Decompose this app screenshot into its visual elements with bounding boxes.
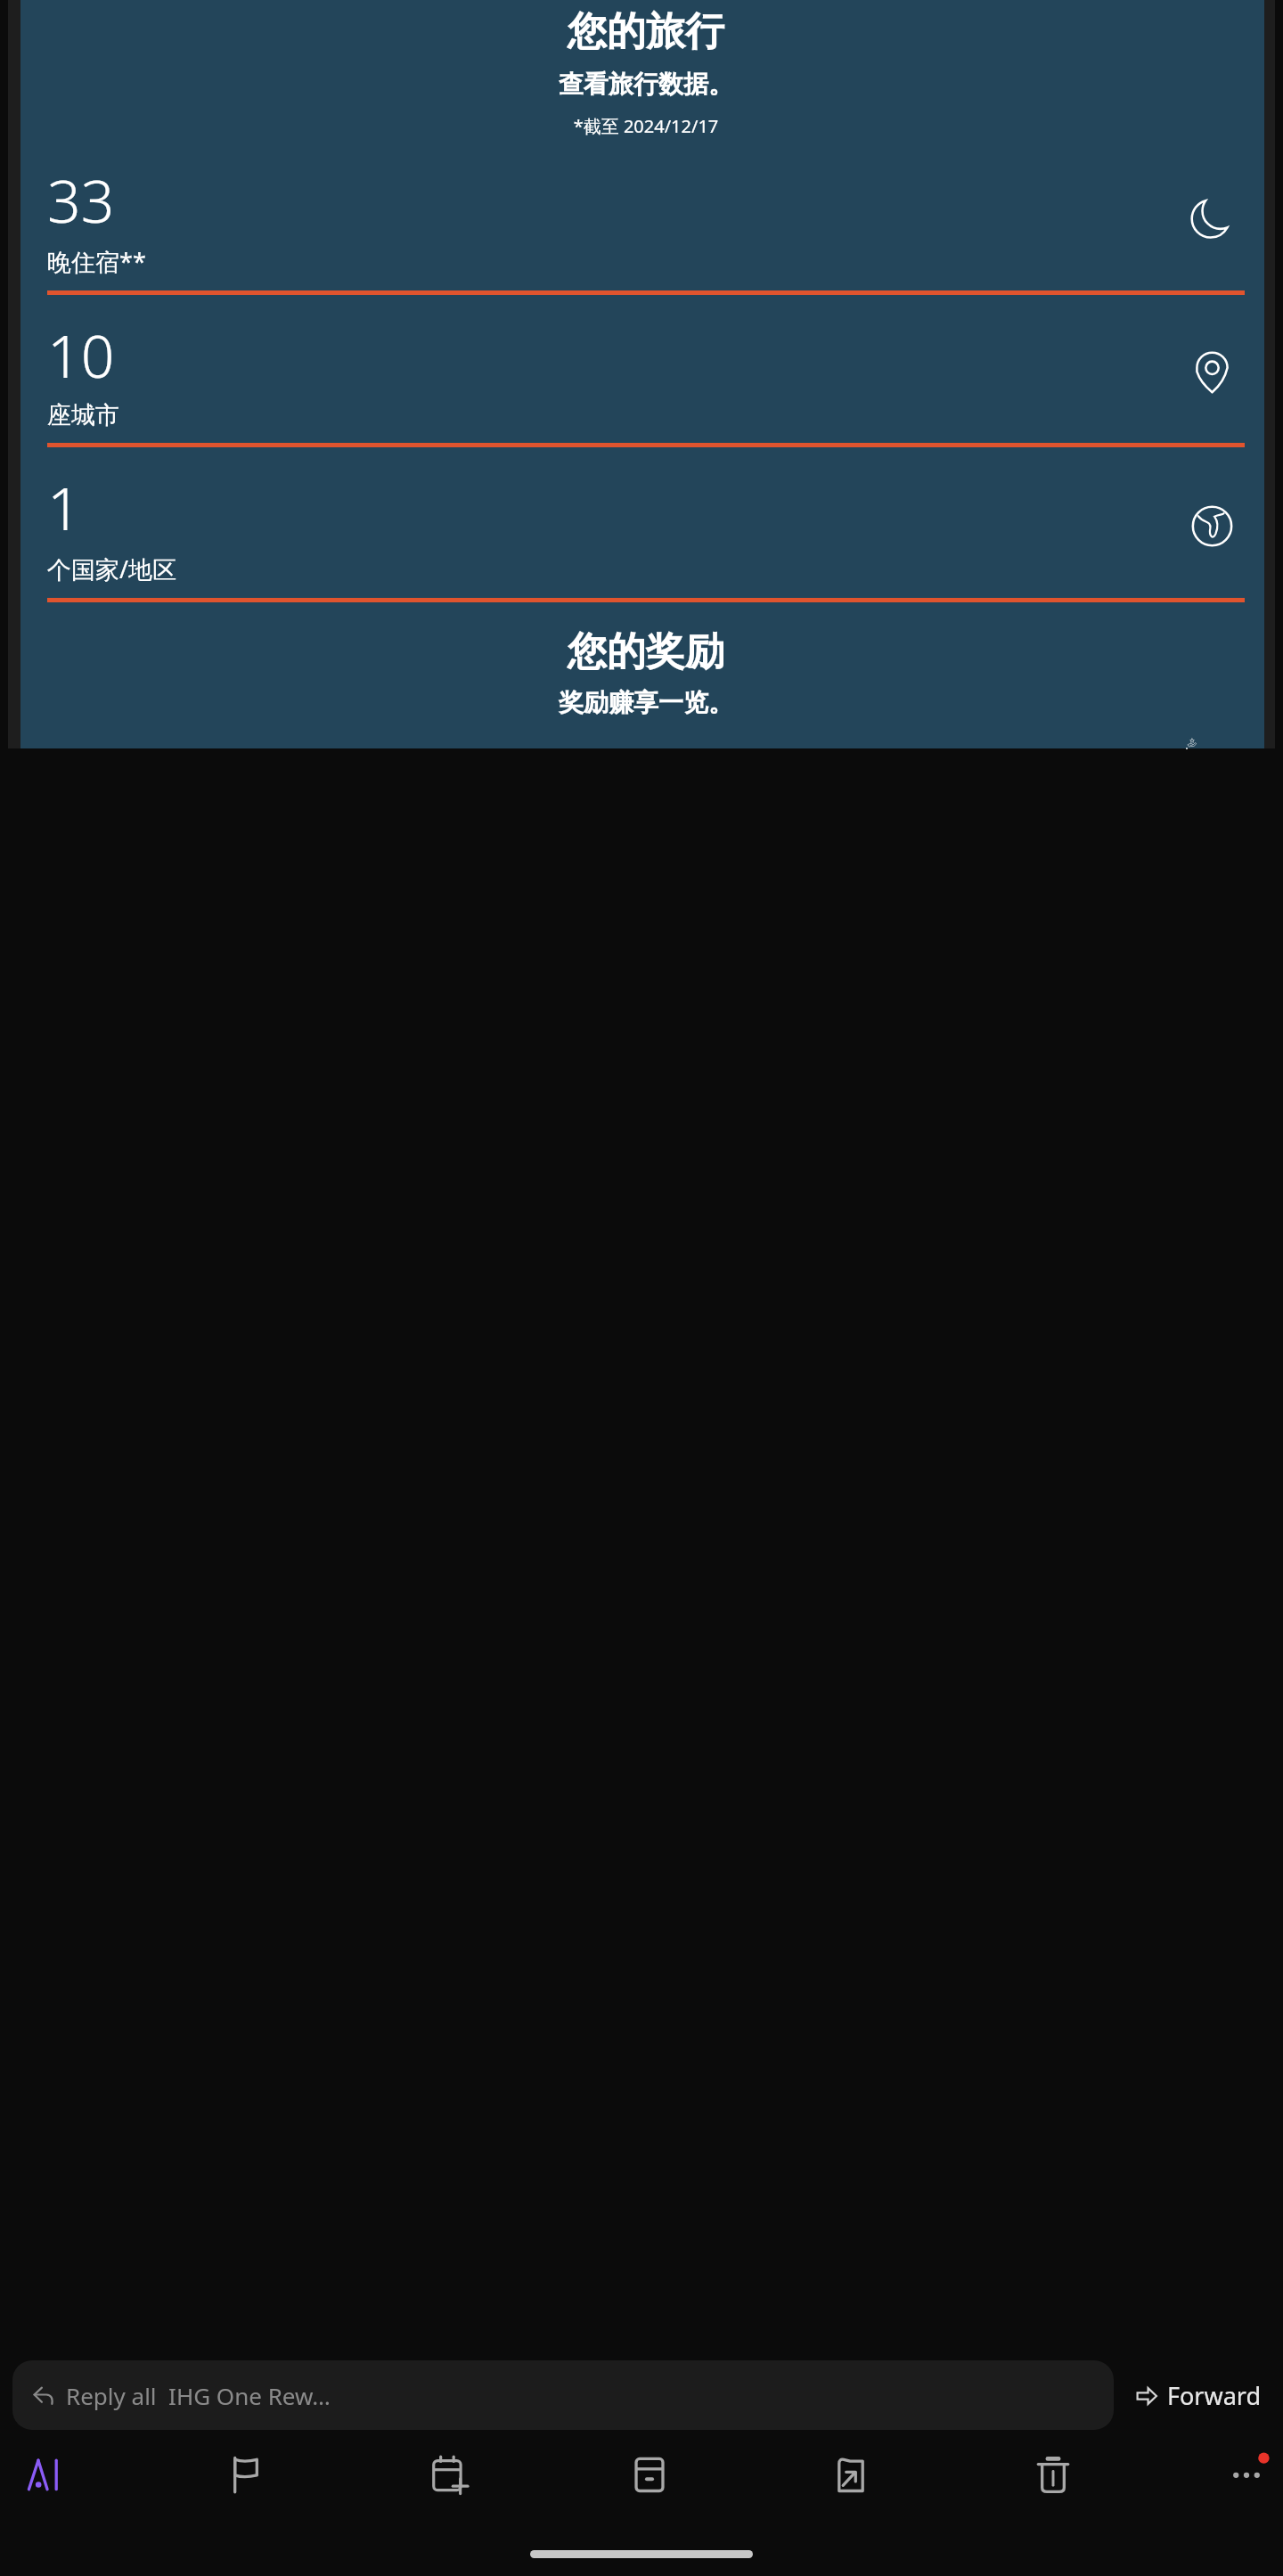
staticText: 您的旅行: [47, 7, 1245, 56]
staticText: 1: [47, 467, 81, 547]
other: Countries icon: [1187, 501, 1238, 552]
other: Cities icon: [1187, 348, 1238, 398]
button[interactable]: Snooze: [416, 2442, 480, 2506]
button[interactable]: 1: [47, 447, 1245, 602]
staticText: Forward: [1167, 2379, 1262, 2412]
button[interactable]: Archive: [617, 2442, 682, 2506]
staticText: 10: [47, 315, 115, 395]
staticText: 晚住宿**: [47, 245, 146, 278]
staticText: 您的奖励: [47, 627, 1245, 676]
button[interactable]: Reply all IHG One Rew…: [12, 2360, 1114, 2430]
staticText: 查看旅行数据。: [47, 69, 1245, 100]
staticText: Reply all IHG One Rew…: [66, 2380, 331, 2411]
button[interactable]: More options: [1222, 2450, 1271, 2498]
button[interactable]: Flag: [214, 2442, 278, 2506]
staticText: 座城市: [47, 400, 119, 430]
button[interactable]: Gemini AI: [12, 2442, 77, 2506]
button[interactable]: 33: [47, 138, 1245, 295]
other: Points icon: [1187, 738, 1238, 748]
button[interactable]: Forward: [1126, 2370, 1271, 2421]
other: Nights icon: [1187, 193, 1238, 244]
staticText: 奖励赚享一览。: [47, 687, 1245, 718]
staticText: *截至 2024/12/17: [47, 114, 1245, 138]
button[interactable]: Delete: [1021, 2442, 1085, 2506]
staticText: 个国家/地区: [47, 552, 177, 585]
staticText: 33: [47, 159, 115, 240]
button[interactable]: Move: [819, 2442, 883, 2506]
button[interactable]: 10: [47, 295, 1245, 447]
